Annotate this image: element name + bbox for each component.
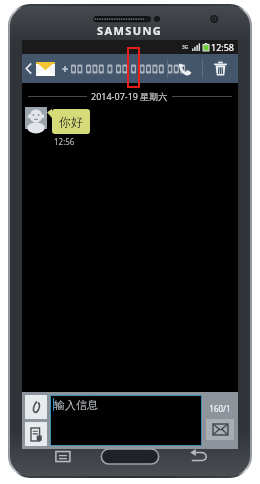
- button[interactable]: Attach: [25, 395, 47, 419]
- button[interactable]: [57, 54, 167, 83]
- button[interactable]: Delete: [203, 54, 237, 83]
- staticText: 12:56: [54, 136, 75, 147]
- button[interactable]: Call: [168, 54, 202, 83]
- staticText: 12:58: [211, 41, 235, 53]
- staticText: 2014-07-19 星期六: [91, 90, 168, 102]
- button[interactable]: Templates: [25, 422, 47, 446]
- staticText: SAMSUNG: [97, 23, 163, 38]
- button[interactable]: Back: [22, 54, 57, 83]
- staticText: 你好: [59, 114, 83, 129]
- button[interactable]: 输入信息: [50, 395, 202, 446]
- staticText: 3G: [182, 44, 189, 51]
- button[interactable]: 你好: [25, 107, 238, 134]
- button[interactable]: Send: [206, 419, 234, 440]
- staticText: 160/1: [209, 403, 231, 414]
- staticText: 输入信息: [54, 398, 98, 412]
